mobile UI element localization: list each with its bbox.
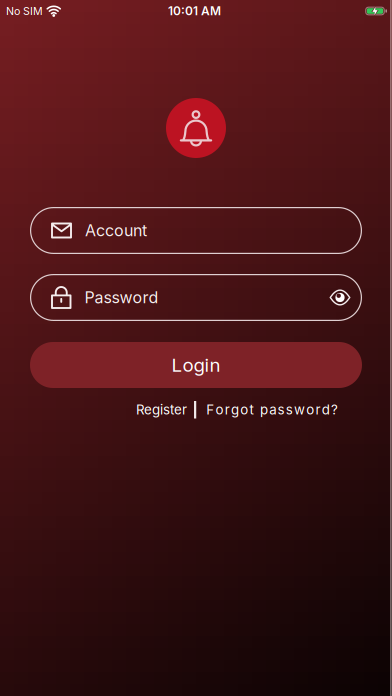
staticText: 10:01 AM	[168, 4, 221, 18]
staticText: o	[240, 402, 248, 418]
staticText: g	[231, 402, 239, 418]
button[interactable]: F	[196, 402, 338, 418]
staticText: s	[286, 402, 293, 418]
staticText: r	[225, 402, 230, 418]
staticText: ?	[331, 402, 338, 418]
staticText: s	[277, 402, 284, 418]
button[interactable]: Register	[136, 402, 187, 418]
staticText: r	[315, 402, 320, 418]
staticText: Register	[136, 402, 187, 418]
button[interactable]: Login	[30, 342, 362, 388]
staticText: w	[294, 402, 305, 418]
staticText: Account	[85, 221, 147, 240]
staticText: p	[260, 402, 268, 418]
staticText: t	[249, 402, 253, 418]
button[interactable]: Show password	[325, 282, 355, 312]
staticText: a	[269, 402, 276, 418]
staticText: o	[306, 402, 314, 418]
staticText: F	[206, 402, 214, 418]
staticText: d	[322, 402, 330, 418]
staticText: Password	[84, 288, 158, 307]
staticText: Login	[171, 354, 220, 376]
staticText: No SIM	[6, 5, 43, 17]
staticText: o	[215, 402, 223, 418]
